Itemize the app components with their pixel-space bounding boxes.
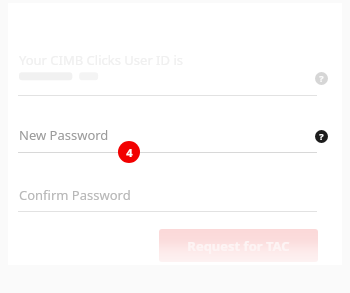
staticText: Confirm Password [19,186,131,204]
button[interactable]: Confirm Password [18,182,317,212]
button[interactable]: Help about new password [313,128,329,144]
staticText: ? [319,72,324,84]
staticText: Request for TAC [187,237,290,255]
button[interactable]: Request for TAC [159,229,318,262]
staticText: 4 [126,145,133,160]
staticText: New Password [19,126,109,144]
staticText: Your CIMB Clicks User ID is [19,51,183,69]
button[interactable]: Help about user ID [313,70,329,86]
button[interactable]: New Password [18,122,317,152]
button[interactable]: Step 4 [118,141,140,163]
staticText: ? [319,130,324,142]
